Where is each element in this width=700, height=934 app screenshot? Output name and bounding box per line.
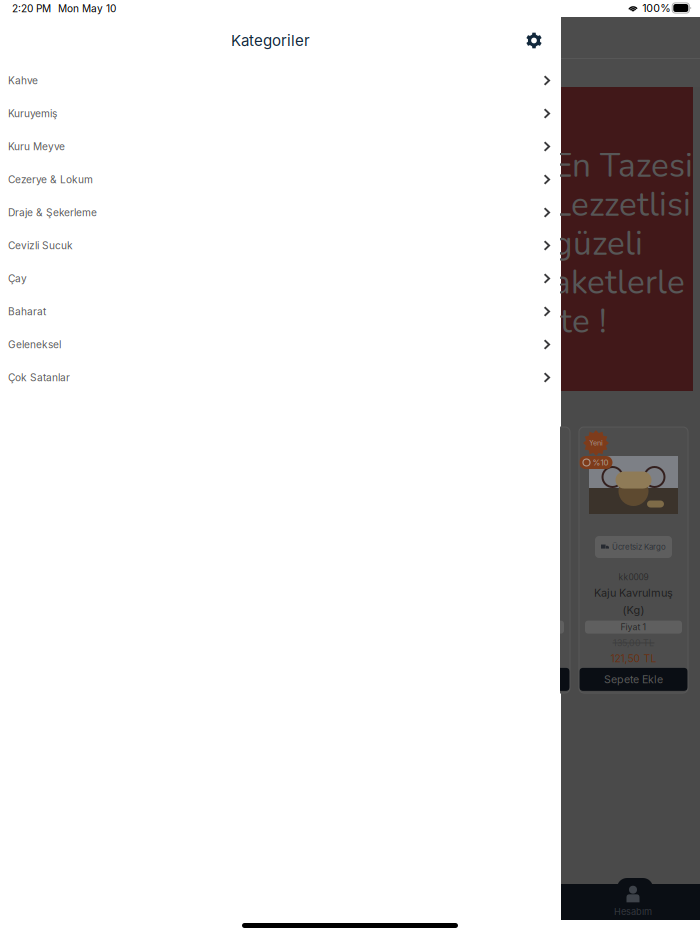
staticText: Geleneksel [8, 338, 61, 351]
button[interactable]: Geleneksel [0, 328, 560, 361]
staticText: Ücretsiz Kargo [612, 542, 666, 552]
staticText: En Tazesi [553, 143, 693, 188]
staticText: Çay [8, 272, 27, 285]
staticText: Draje & Şekerleme [8, 206, 97, 219]
button[interactable]: Kuruyemiş [0, 97, 560, 130]
button[interactable]: Yeni [579, 427, 688, 693]
button[interactable]: Yeni [461, 427, 570, 693]
staticText: Kahve [8, 74, 38, 87]
staticText: 'te ! [553, 299, 607, 344]
staticText: Kategoriler [231, 31, 310, 50]
button[interactable]: Baharat [0, 295, 560, 328]
staticText: kk0009 [618, 572, 648, 582]
staticText: %10 [592, 458, 608, 467]
staticText: 2:20 PM [12, 2, 51, 15]
button[interactable]: Çay [0, 262, 560, 295]
staticText: Lezzetlisi [553, 182, 691, 227]
button[interactable]: Çok Satanlar [0, 361, 560, 394]
staticText: aketlerle [553, 260, 685, 305]
staticText: 121,50 TL [610, 652, 656, 665]
staticText: Baharat [8, 305, 46, 318]
staticText: güzeli [553, 221, 643, 266]
staticText: 135,00 TL [613, 638, 654, 648]
staticText: 100% [642, 1, 670, 14]
staticText: Cevizli Sucuk [8, 239, 73, 252]
button[interactable]: Cezerye & Lokum [0, 163, 560, 196]
staticText: Mon May 10 [58, 2, 116, 15]
button[interactable]: Kuru Meyve [0, 130, 560, 163]
staticText: Cezerye & Lokum [8, 173, 93, 186]
button[interactable]: Settings [517, 23, 551, 57]
staticText: Fiyat 1 [620, 622, 646, 632]
staticText: Hesabım [614, 906, 652, 917]
staticText: Yeni [589, 439, 603, 447]
staticText: Sepete Ekle [604, 673, 663, 686]
staticText: Çok Satanlar [8, 371, 70, 384]
staticText: Kaju Kavrulmuş [594, 586, 673, 599]
button[interactable]: Kahve [0, 64, 560, 97]
button[interactable]: Hesabım [561, 884, 700, 917]
button[interactable]: Draje & Şekerleme [0, 196, 560, 229]
staticText: Kuruyemiş [8, 107, 57, 120]
staticText: (Kg) [622, 603, 644, 617]
button[interactable]: Cevizli Sucuk [0, 229, 560, 262]
staticText: Kuru Meyve [8, 140, 65, 153]
